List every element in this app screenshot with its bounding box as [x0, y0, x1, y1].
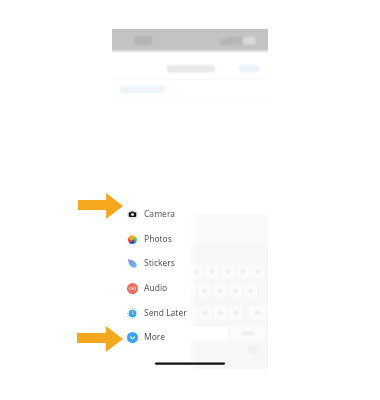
staticText: Camera	[144, 208, 175, 220]
staticText: Audio	[144, 282, 168, 294]
staticText: Send Later	[144, 307, 187, 319]
button[interactable]: Audio	[122, 276, 188, 300]
button[interactable]: Points to More	[77, 326, 123, 352]
staticText: Photos	[144, 233, 172, 245]
button[interactable]: Points to Camera	[78, 193, 123, 219]
button[interactable]: Camera	[122, 202, 188, 226]
button[interactable]: More	[122, 325, 188, 349]
staticText: More	[144, 331, 165, 343]
button[interactable]: Photos	[122, 227, 188, 251]
button[interactable]: Stickers	[122, 251, 188, 275]
button[interactable]: Send Later	[122, 301, 188, 325]
staticText: Stickers	[144, 257, 175, 269]
